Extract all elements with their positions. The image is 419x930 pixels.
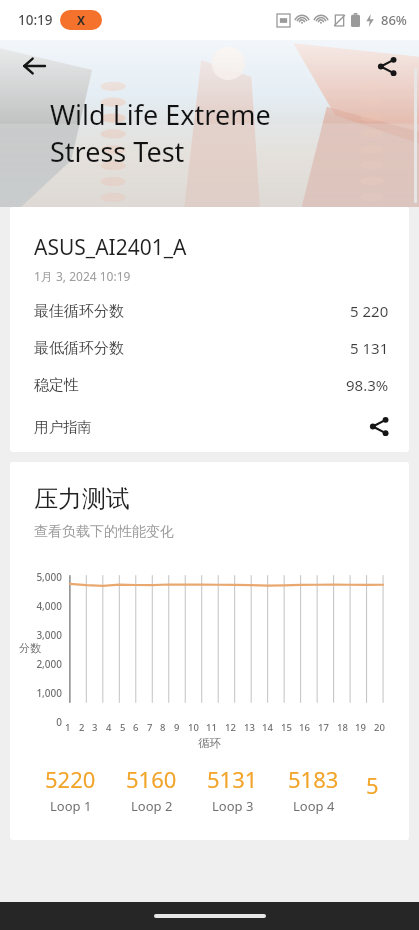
staticText: Loop 4 — [293, 797, 335, 815]
staticText: Wild Life Extreme Stress Test — [50, 96, 271, 170]
staticText: 19 — [355, 721, 366, 734]
staticText: Loop 3 — [212, 797, 254, 815]
staticText: 15 — [281, 721, 292, 734]
staticText: 86% — [381, 11, 407, 29]
staticText: 10:19 — [18, 11, 53, 29]
button[interactable]: Share — [365, 44, 409, 88]
staticText: 2 — [79, 721, 85, 734]
staticText: 最佳循环分数 — [34, 302, 124, 321]
staticText: 1,000 — [34, 686, 62, 700]
button[interactable]: 5160 — [115, 756, 187, 822]
staticText: 20 — [374, 721, 385, 734]
staticText: 11 — [206, 721, 217, 734]
staticText: 压力测试 — [34, 484, 130, 514]
button[interactable]: Back — [12, 44, 56, 88]
staticText: 0 — [34, 715, 62, 729]
staticText: 5 220 — [350, 301, 389, 321]
staticText: 98.3% — [346, 375, 389, 395]
staticText: 6 — [133, 721, 139, 734]
staticText: Loop 1 — [50, 797, 92, 815]
button[interactable]: 5 — [358, 756, 384, 822]
staticText: 18 — [337, 721, 348, 734]
staticText: 循环 — [198, 736, 221, 750]
button[interactable]: 5183 — [277, 756, 349, 822]
staticText: 5,000 — [34, 570, 62, 584]
staticText: 8 — [160, 721, 166, 734]
staticText: 7 — [147, 721, 153, 734]
staticText: X — [77, 12, 86, 28]
staticText: 最低循环分数 — [34, 339, 124, 358]
staticText: 10 — [188, 721, 199, 734]
staticText: 17 — [318, 721, 329, 734]
button[interactable]: 用户指南 — [34, 417, 389, 436]
staticText: 5 — [120, 721, 126, 734]
staticText: 12 — [225, 721, 236, 734]
staticText: 5 — [366, 770, 379, 800]
button[interactable]: 5220 — [34, 756, 106, 822]
staticText: 2,000 — [34, 657, 62, 671]
staticText: 5160 — [126, 764, 177, 794]
staticText: 5220 — [45, 764, 96, 794]
staticText: 4 — [106, 721, 112, 734]
staticText: 14 — [262, 721, 273, 734]
staticText: 查看负载下的性能变化 — [34, 523, 174, 541]
staticText: 4,000 — [34, 599, 62, 613]
staticText: 分数 — [19, 641, 41, 675]
staticText: 3,000 — [34, 628, 62, 642]
staticText: 稳定性 — [34, 376, 79, 395]
staticText: 16 — [299, 721, 310, 734]
staticText: 13 — [244, 721, 255, 734]
staticText: ASUS_AI2401_A — [34, 233, 187, 262]
staticText: Loop 2 — [131, 797, 173, 815]
staticText: 1月 3, 2024 10:19 — [34, 268, 131, 284]
staticText: 1 — [65, 721, 71, 734]
staticText: 9 — [174, 721, 180, 734]
staticText: 3 — [92, 721, 98, 734]
staticText: 5131 — [207, 764, 258, 794]
staticText: 5183 — [288, 764, 339, 794]
staticText: 5 131 — [350, 338, 389, 358]
button[interactable]: 5131 — [196, 756, 268, 822]
staticText: 用户指南 — [34, 418, 92, 436]
